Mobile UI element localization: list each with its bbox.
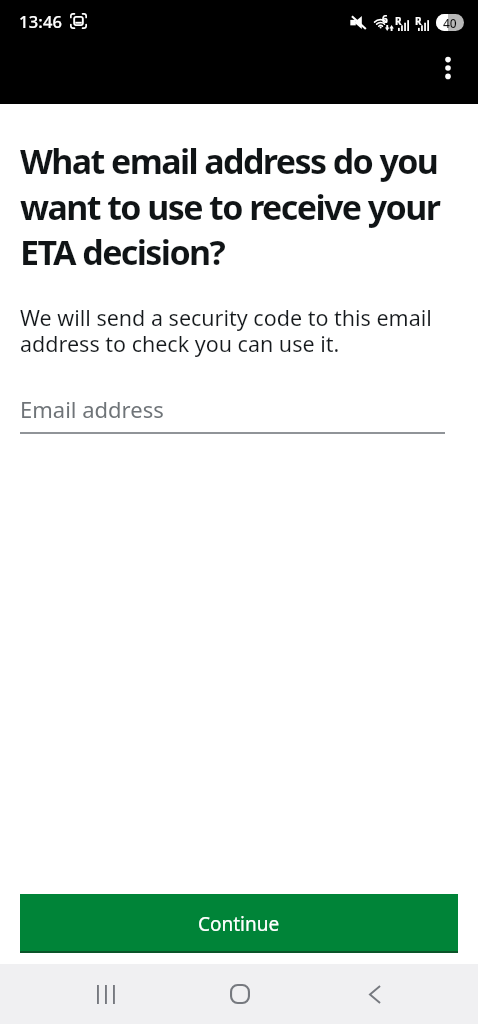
staticText: R [395,14,402,28]
button[interactable]: Continue [20,894,458,953]
button[interactable]: More options [424,44,472,92]
staticText: 13:46 [19,10,63,32]
staticText: We will send a security code to this ema… [20,303,458,359]
staticText: 6 [382,12,388,26]
staticText: Continue [198,911,280,937]
button[interactable]: Home [210,964,270,1024]
staticText: 40 [443,15,457,31]
button[interactable]: Back [345,964,405,1024]
staticText: R [415,14,422,28]
button[interactable]: Recent apps [76,964,136,1024]
button[interactable]: Email address input [20,394,458,434]
staticText: Email address [20,394,164,424]
staticText: What email address do you want to use to… [20,138,458,275]
